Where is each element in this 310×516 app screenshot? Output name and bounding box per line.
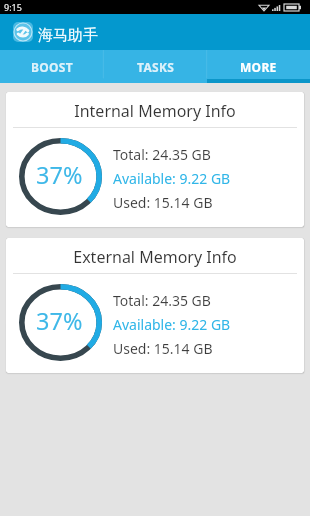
- button[interactable]: BOOST: [0, 50, 104, 83]
- staticText: Total: 24.35 GB: [113, 291, 211, 310]
- staticText: Used: 15.14 GB: [113, 193, 213, 212]
- staticText: TASKS: [137, 59, 175, 75]
- staticText: 37%: [36, 305, 83, 337]
- button[interactable]: TASKS: [104, 50, 207, 83]
- staticText: Used: 15.14 GB: [113, 339, 213, 358]
- staticText: Available: 9.22 GB: [113, 169, 231, 188]
- staticText: 海马助手: [38, 26, 98, 45]
- staticText: External Memory Info: [6, 246, 304, 268]
- staticText: MORE: [240, 59, 277, 75]
- staticText: 37%: [36, 159, 83, 191]
- staticText: Internal Memory Info: [6, 100, 304, 122]
- staticText: Total: 24.35 GB: [113, 145, 211, 164]
- staticText: 9:15: [4, 1, 22, 13]
- button[interactable]: External Memory Info: [6, 238, 304, 373]
- staticText: Available: 9.22 GB: [113, 315, 231, 334]
- button[interactable]: MORE: [207, 50, 310, 83]
- staticText: BOOST: [31, 59, 74, 75]
- button[interactable]: Internal Memory Info: [6, 92, 304, 227]
- button[interactable]: App logo: [13, 22, 33, 42]
